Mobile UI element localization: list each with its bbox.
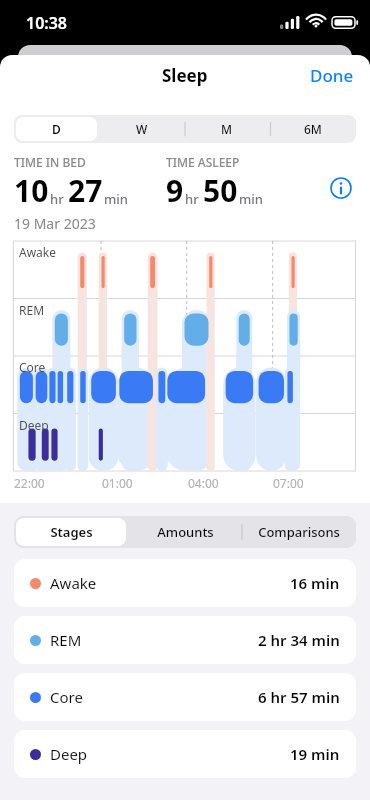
staticText: 07:00 <box>273 475 356 491</box>
staticText: 10:38 <box>26 12 68 34</box>
staticText: 6 hr 57 min <box>258 687 340 707</box>
staticText: 50 <box>203 170 238 211</box>
staticText: 27 <box>68 170 103 211</box>
staticText: M <box>221 121 233 137</box>
staticText: hr <box>185 190 199 208</box>
staticText: Awake <box>19 244 57 260</box>
staticText: Deep <box>19 417 49 433</box>
button[interactable]: Stages <box>16 518 126 546</box>
button[interactable]: D <box>16 117 97 141</box>
staticText: 9 <box>166 170 184 211</box>
button[interactable]: Awake <box>14 559 356 607</box>
staticText: TIME IN BED <box>14 154 86 170</box>
button[interactable]: Core <box>14 673 356 721</box>
staticText: 19 min <box>290 744 340 764</box>
button[interactable]: REM <box>14 616 356 664</box>
button[interactable]: 6M <box>272 117 354 141</box>
staticText: 10 <box>14 170 49 211</box>
staticText: REM <box>50 630 82 650</box>
button[interactable]: Done <box>294 56 370 95</box>
button[interactable]: M <box>186 117 268 141</box>
staticText: W <box>136 121 148 137</box>
staticText: Amounts <box>157 523 214 541</box>
button[interactable]: Amounts <box>130 518 240 546</box>
button[interactable]: Deep <box>14 730 356 778</box>
button[interactable]: W <box>101 117 182 141</box>
staticText: Awake <box>50 573 97 593</box>
staticText: Core <box>19 359 46 375</box>
staticText: 19 Mar 2023 <box>14 214 96 233</box>
staticText: D <box>52 121 61 137</box>
staticText: Done <box>310 64 354 87</box>
staticText: REM <box>19 302 45 318</box>
staticText: 04:00 <box>188 475 356 491</box>
button[interactable]: Comparisons <box>244 518 354 546</box>
staticText: min <box>104 190 128 208</box>
staticText: Sleep <box>162 64 208 87</box>
staticText: Comparisons <box>258 523 340 541</box>
staticText: hr <box>50 190 64 208</box>
staticText: Core <box>50 687 83 707</box>
staticText: Deep <box>50 744 88 764</box>
staticText: 16 min <box>290 573 340 593</box>
staticText: 6M <box>304 121 322 137</box>
staticText: 01:00 <box>102 475 356 491</box>
button[interactable]: Information <box>326 173 356 203</box>
staticText: min <box>239 190 263 208</box>
staticText: Stages <box>50 523 93 541</box>
staticText: TIME ASLEEP <box>166 154 240 170</box>
staticText: 2 hr 34 min <box>258 630 340 650</box>
staticText: 22:00 <box>14 475 356 491</box>
